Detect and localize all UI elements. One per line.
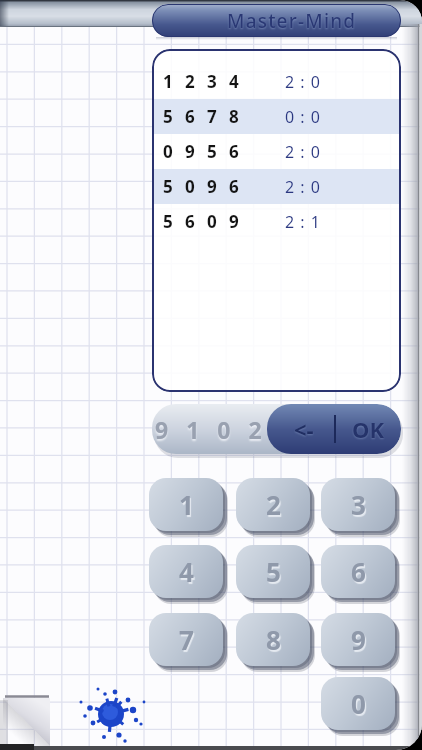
staticText: 7 — [207, 105, 217, 128]
staticText: 6 — [351, 554, 366, 589]
button[interactable]: 4 — [149, 545, 223, 598]
staticText: 5 — [207, 140, 217, 163]
staticText: 7 — [179, 622, 194, 657]
button[interactable]: 8 — [236, 613, 310, 666]
button[interactable]: 5 — [152, 204, 401, 239]
staticText: 3 — [207, 70, 217, 93]
staticText: 6 — [229, 140, 239, 163]
staticText: 6 — [185, 105, 195, 128]
staticText: 5 — [266, 554, 281, 589]
staticText: 2 : 0 — [285, 141, 321, 163]
button[interactable]: 5 — [236, 545, 310, 598]
staticText: 6 — [185, 210, 195, 233]
staticText: 2 : 0 — [285, 71, 321, 93]
staticText: OK — [352, 414, 385, 444]
staticText: 0 — [351, 686, 366, 721]
staticText: 5 — [163, 210, 173, 233]
button[interactable]: 5 — [152, 169, 401, 204]
staticText: 0 : 0 — [285, 106, 321, 128]
staticText: 2 : 1 — [285, 211, 321, 233]
button[interactable]: 7 — [149, 613, 223, 666]
button[interactable]: <- — [275, 404, 333, 454]
staticText: 9 1 0 2 — [155, 414, 268, 445]
button[interactable]: 0 — [152, 134, 401, 169]
button[interactable]: 5 — [152, 99, 401, 134]
staticText: 2 — [266, 487, 281, 522]
staticText: <- — [294, 414, 314, 444]
staticText: 2 — [185, 70, 195, 93]
staticText: Master-Mind — [227, 8, 357, 34]
button[interactable]: OK — [339, 404, 397, 454]
staticText: 0 — [185, 175, 195, 198]
staticText: 2 : 0 — [285, 176, 321, 198]
button[interactable]: 9 — [321, 613, 395, 666]
staticText: 5 — [163, 175, 173, 198]
staticText: 4 — [179, 554, 194, 589]
staticText: 8 — [229, 105, 239, 128]
staticText: 8 — [266, 622, 281, 657]
staticText: 0 — [163, 140, 173, 163]
staticText: 3 — [351, 487, 366, 522]
button[interactable]: Master-Mind — [152, 4, 401, 37]
button[interactable]: 6 — [321, 545, 395, 598]
button[interactable]: 1 — [152, 64, 401, 99]
staticText: 9 — [351, 622, 366, 657]
staticText: 4 — [229, 70, 239, 93]
staticText: 1 — [163, 70, 173, 93]
button[interactable]: 1 — [149, 478, 223, 531]
button[interactable]: 3 — [321, 478, 395, 531]
staticText: 5 — [163, 105, 173, 128]
staticText: 9 — [207, 175, 217, 198]
staticText: 9 — [229, 210, 239, 233]
button[interactable]: 2 — [236, 478, 310, 531]
staticText: 1 — [179, 487, 194, 522]
staticText: 0 — [207, 210, 217, 233]
staticText: 6 — [229, 175, 239, 198]
staticText: 9 — [185, 140, 195, 163]
button[interactable]: 0 — [321, 677, 395, 730]
